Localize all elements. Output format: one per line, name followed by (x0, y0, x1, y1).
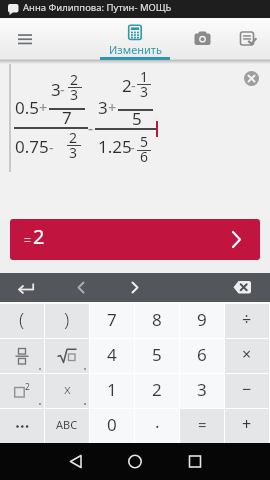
staticText: ABC (56, 417, 78, 432)
staticText: 2 (69, 128, 78, 147)
button[interactable]: 8 (135, 304, 179, 338)
button[interactable] (168, 443, 222, 480)
button[interactable]: 6 (180, 339, 224, 373)
staticText: 0 (107, 413, 117, 436)
staticText: - (130, 137, 135, 157)
button[interactable]: + (225, 409, 269, 443)
staticText: 6 (197, 343, 207, 366)
staticText: 3 (69, 143, 78, 162)
staticText: 2 (33, 223, 45, 250)
button[interactable]: . (135, 409, 179, 443)
button[interactable]: × (225, 339, 269, 373)
button[interactable]: 9 (180, 304, 224, 338)
staticText: 2 (122, 74, 132, 97)
button[interactable] (0, 18, 50, 60)
staticText: = (24, 232, 31, 248)
staticText: x (64, 380, 71, 398)
staticText: 2 (25, 381, 30, 393)
staticText: 7 (62, 106, 72, 129)
button[interactable]: ( (0, 304, 44, 338)
staticText: 8 (152, 308, 162, 331)
staticText: - (131, 75, 136, 95)
button[interactable]: x (45, 374, 89, 408)
button[interactable] (216, 273, 270, 302)
button[interactable]: ) (45, 304, 89, 338)
staticText: 1 (107, 378, 117, 401)
staticText: = (198, 414, 207, 434)
button[interactable]: 0 (90, 409, 134, 443)
staticText: ( (19, 306, 25, 332)
button[interactable] (108, 443, 162, 480)
staticText: ) (64, 306, 70, 332)
staticText: ÷ (242, 308, 252, 330)
staticText: 3 (140, 82, 149, 101)
button[interactable]: = (10, 219, 260, 260)
staticText: 5 (132, 107, 142, 130)
staticText: 3 (98, 96, 108, 119)
button[interactable] (48, 443, 102, 480)
staticText: - (60, 79, 65, 99)
staticText: 5 (152, 343, 162, 366)
button[interactable]: = (180, 409, 224, 443)
staticText: 2 (152, 378, 162, 401)
button[interactable]: Изменить (100, 18, 170, 60)
button[interactable]: ÷ (225, 304, 269, 338)
staticText: 3 (70, 85, 79, 104)
button[interactable]: ABC (45, 409, 89, 443)
button[interactable]: 7 (90, 304, 134, 338)
button[interactable] (54, 273, 108, 302)
button[interactable] (180, 18, 225, 60)
button[interactable] (0, 409, 44, 443)
staticText: × (242, 343, 252, 365)
button[interactable]: − (225, 374, 269, 408)
button[interactable] (0, 273, 54, 302)
button[interactable] (45, 339, 89, 373)
button[interactable] (108, 273, 162, 302)
staticText: + (242, 413, 252, 435)
button[interactable]: 1 (90, 374, 134, 408)
staticText: 7 (107, 308, 117, 331)
staticText: 2 (70, 70, 79, 89)
button[interactable] (0, 339, 44, 373)
staticText: 5 (140, 132, 149, 151)
staticText: + (108, 97, 117, 117)
button[interactable] (225, 18, 270, 60)
staticText: 3 (51, 78, 61, 101)
staticText: . (155, 410, 160, 433)
staticText: Изменить (109, 42, 162, 55)
staticText: + (39, 97, 48, 117)
staticText: - (49, 137, 54, 157)
button[interactable]: 2 (0, 374, 44, 408)
staticText: Анна Филиппова: Путин- МОЩЬ (23, 1, 172, 14)
staticText: 3 (197, 378, 207, 401)
staticText: 1 (140, 67, 149, 86)
staticText: - (88, 117, 94, 139)
staticText: 4 (107, 343, 117, 366)
staticText: 0.75 (15, 135, 49, 158)
staticText: 6 (140, 147, 149, 166)
button[interactable]: 5 (135, 339, 179, 373)
button[interactable]: 3 (180, 374, 224, 408)
staticText: 1.25 (98, 135, 132, 158)
button[interactable]: 4 (90, 339, 134, 373)
button[interactable] (244, 71, 259, 86)
staticText: − (242, 378, 252, 400)
staticText: 9 (197, 308, 207, 331)
button[interactable]: 2 (135, 374, 179, 408)
staticText: 0.5 (15, 96, 40, 119)
